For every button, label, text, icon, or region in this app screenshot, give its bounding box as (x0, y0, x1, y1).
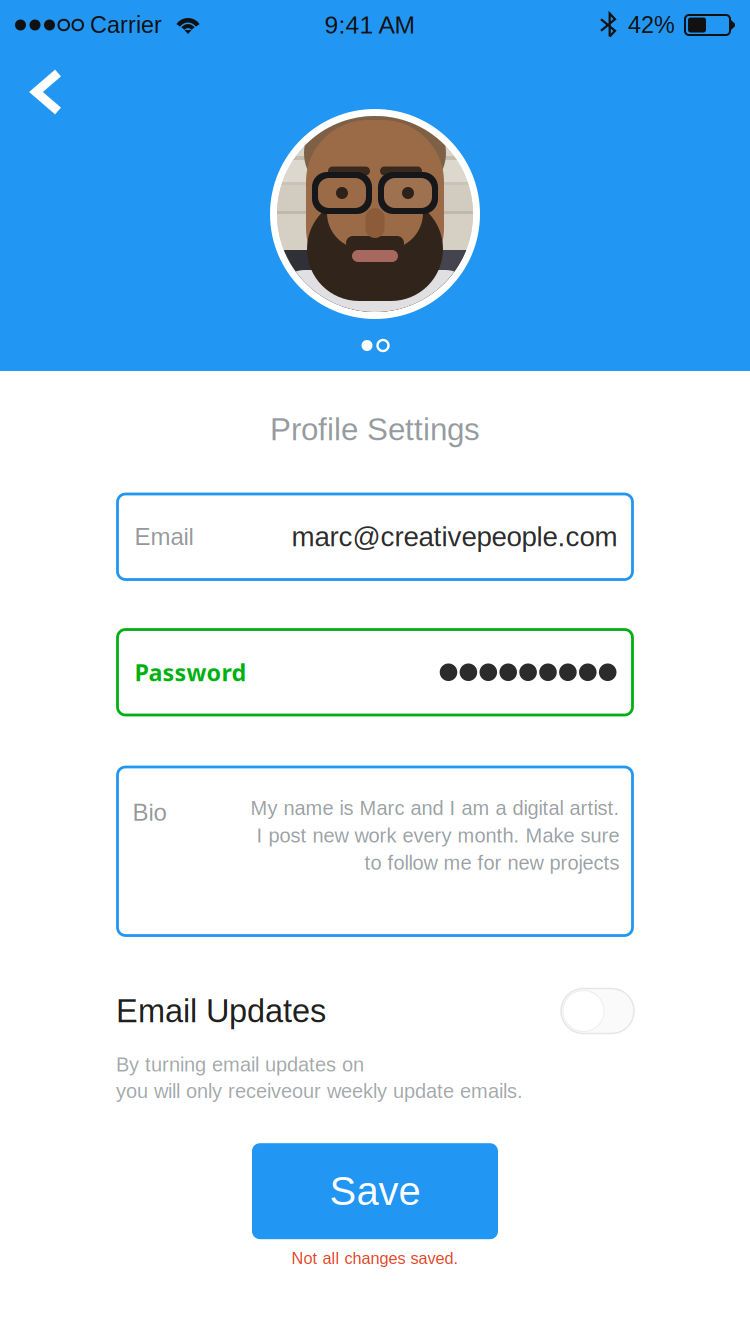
button[interactable]: Email (117, 494, 632, 579)
staticText: Carrier (90, 12, 162, 38)
staticText: Save (329, 1169, 420, 1213)
button[interactable]: Password (117, 629, 632, 715)
staticText: I post new work every month. Make sure (256, 824, 619, 847)
staticText: By turning email updates on (116, 1053, 364, 1076)
staticText: 42% (628, 12, 675, 38)
staticText: Email Updates (116, 993, 326, 1029)
staticText: marc@creativepeople.com (291, 521, 617, 552)
button[interactable]: Email Updates (561, 988, 634, 1033)
staticText: Password (134, 656, 246, 688)
staticText: you will only receiveour weekly update e… (116, 1080, 523, 1102)
button[interactable]: Bio (117, 767, 632, 935)
button[interactable]: Save (252, 1143, 498, 1239)
staticText: Not all changes saved. (291, 1249, 458, 1267)
button[interactable]: Back (0, 48, 80, 131)
staticText: Profile Settings (270, 412, 480, 447)
staticText: Email (134, 523, 193, 550)
staticText: My name is Marc and I am a digital artis… (250, 797, 619, 819)
staticText: 9:41 AM (324, 11, 415, 39)
staticText: Bio (132, 799, 166, 826)
staticText: to follow me for new projects (364, 852, 619, 874)
